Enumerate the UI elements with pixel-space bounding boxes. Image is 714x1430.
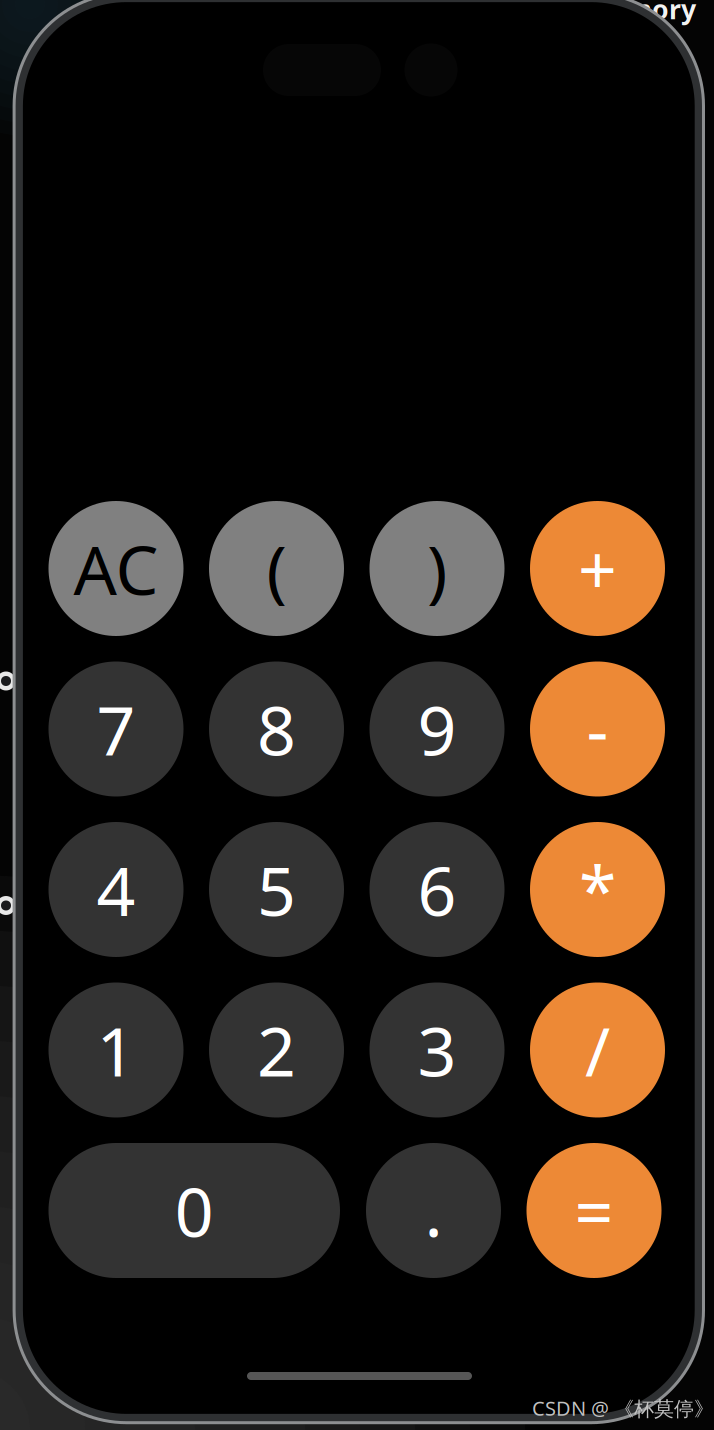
staticText: ( bbox=[266, 523, 286, 614]
staticText: 8 bbox=[257, 684, 296, 774]
staticText: AC bbox=[73, 523, 158, 614]
button[interactable]: AC bbox=[48, 501, 183, 636]
button[interactable]: + bbox=[530, 501, 665, 636]
staticText: = bbox=[574, 1165, 613, 1256]
staticText: 2 bbox=[257, 1005, 296, 1095]
staticText: 6 bbox=[417, 844, 456, 935]
staticText: 4 bbox=[96, 844, 135, 935]
staticText: 7 bbox=[96, 684, 135, 774]
button[interactable]: 2 bbox=[209, 982, 344, 1117]
button[interactable]: 3 bbox=[369, 982, 504, 1117]
button[interactable]: 7 bbox=[48, 661, 183, 796]
staticText: 5 bbox=[257, 844, 296, 935]
staticText: ) bbox=[427, 523, 447, 614]
staticText: - bbox=[586, 684, 608, 774]
button[interactable]: 8 bbox=[209, 661, 344, 796]
staticText: + bbox=[578, 523, 617, 614]
staticText: 0 bbox=[175, 1165, 214, 1256]
staticText: * bbox=[579, 844, 616, 935]
button[interactable]: . bbox=[366, 1143, 501, 1278]
button[interactable]: ( bbox=[209, 501, 344, 636]
button[interactable]: - bbox=[530, 661, 665, 796]
staticText: 3 bbox=[417, 1005, 456, 1095]
button[interactable]: 4 bbox=[48, 822, 183, 957]
staticText: 9 bbox=[417, 684, 456, 774]
button[interactable]: * bbox=[530, 822, 665, 957]
staticText: mory bbox=[626, 0, 696, 27]
button[interactable]: / bbox=[530, 982, 665, 1117]
button[interactable]: = bbox=[526, 1143, 661, 1278]
button[interactable]: 5 bbox=[209, 822, 344, 957]
button[interactable]: 9 bbox=[369, 661, 504, 796]
staticText: / bbox=[585, 1005, 610, 1095]
button[interactable]: 0 bbox=[48, 1143, 340, 1278]
staticText: CSDN @ 《杯莫停》 bbox=[532, 1395, 714, 1421]
button[interactable]: ) bbox=[369, 501, 504, 636]
button[interactable]: 6 bbox=[369, 822, 504, 957]
button[interactable]: 1 bbox=[48, 982, 183, 1117]
staticText: 1 bbox=[96, 1005, 135, 1095]
staticText: . bbox=[424, 1165, 442, 1256]
